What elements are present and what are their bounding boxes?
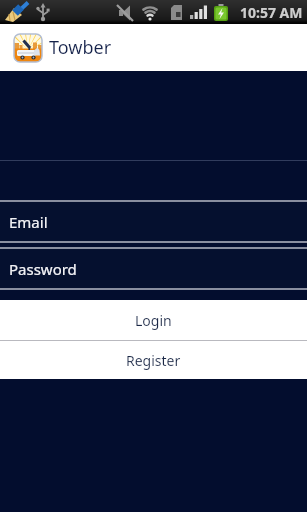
button[interactable]: Login — [0, 300, 307, 340]
staticText: Towber — [49, 35, 112, 60]
staticText: Register — [126, 351, 181, 370]
staticText: Email — [9, 212, 48, 232]
staticText: 10:57 AM — [240, 3, 303, 22]
staticText: Password — [9, 259, 77, 279]
button[interactable]: Password — [0, 249, 307, 288]
button[interactable]: Register — [0, 341, 307, 379]
staticText: Login — [135, 311, 172, 330]
button[interactable]: Email — [0, 202, 307, 241]
